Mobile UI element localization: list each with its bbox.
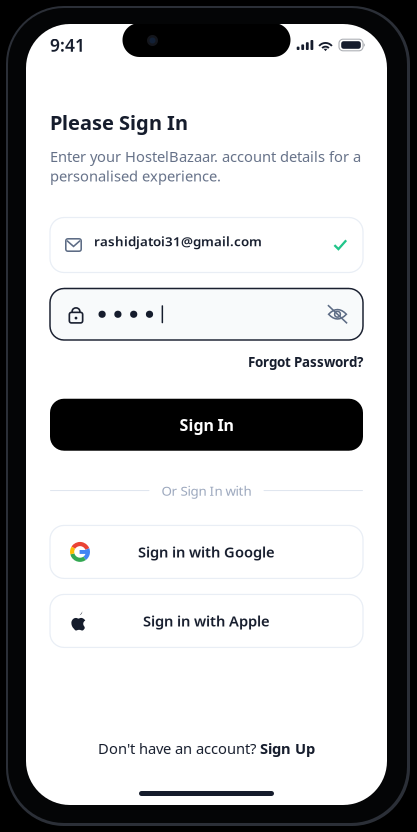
button[interactable]: Don't have an account? — [98, 738, 315, 758]
staticText: Enter your HostelBazaar. account details… — [50, 147, 361, 186]
staticText: 9:41 — [50, 33, 85, 56]
button[interactable]: Forgot Password? — [248, 340, 363, 377]
staticText: rashidjatoi31@gmail.com — [94, 232, 262, 250]
staticText: Sign In — [179, 414, 233, 435]
button[interactable]: Sign In — [50, 399, 363, 451]
staticText: Please Sign In — [50, 109, 188, 136]
staticText: Sign in with Google — [138, 542, 275, 562]
staticText: Don't have an account? — [98, 738, 256, 758]
staticText: Forgot Password? — [248, 353, 363, 371]
staticText: Sign in with Apple — [143, 611, 270, 631]
button[interactable]: Sign in with Apple — [50, 594, 363, 647]
button[interactable]: Sign in with Google — [50, 525, 363, 578]
staticText: Sign Up — [260, 738, 315, 758]
staticText: Or Sign In with — [161, 482, 251, 499]
